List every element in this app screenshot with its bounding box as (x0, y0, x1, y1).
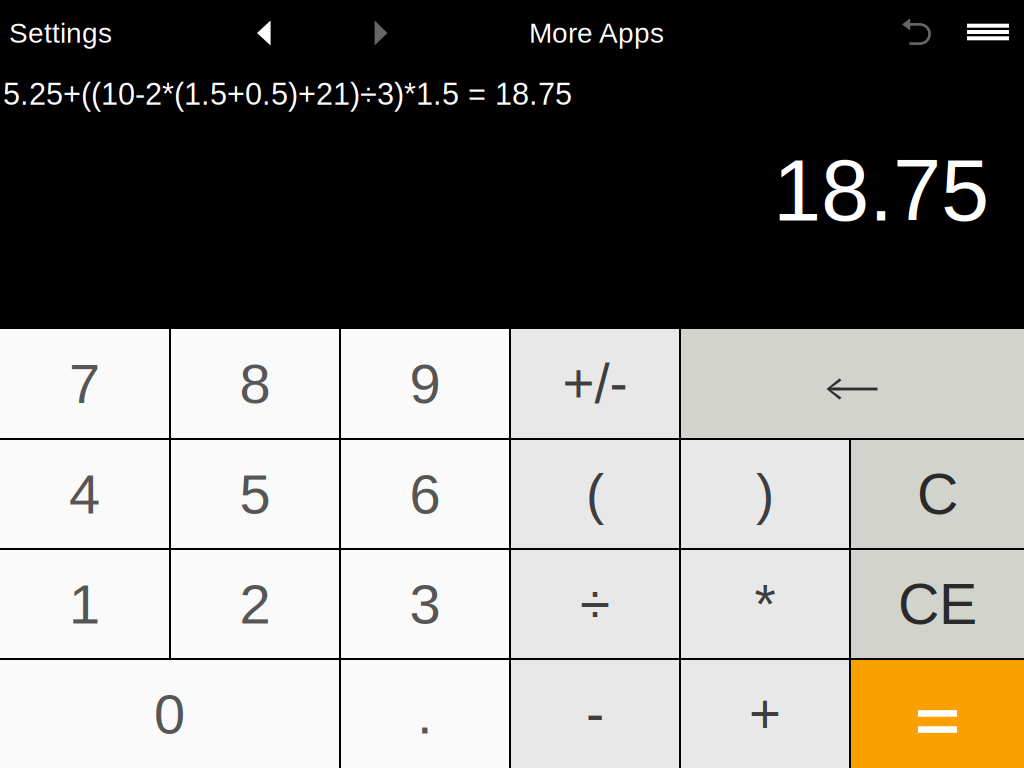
staticText: +/- (562, 353, 627, 414)
staticText: C (917, 462, 958, 526)
button[interactable]: - (511, 660, 679, 768)
staticText: 0 (154, 683, 185, 745)
button[interactable]: Undo (892, 11, 940, 55)
button[interactable]: Menu (959, 13, 1017, 53)
button[interactable]: ( (511, 440, 679, 548)
button[interactable]: 1 (0, 550, 169, 658)
staticText: . (417, 683, 433, 745)
button[interactable]: CE (851, 550, 1024, 658)
staticText: + (749, 683, 781, 745)
staticText: 8 (239, 352, 270, 415)
staticText: ÷ (580, 573, 610, 635)
button[interactable]: 5 (171, 440, 339, 548)
button[interactable]: 8 (171, 329, 339, 438)
staticText: - (586, 683, 604, 745)
staticText: 3 (409, 573, 440, 635)
button[interactable]: 7 (0, 329, 169, 438)
button[interactable]: +/- (511, 329, 679, 438)
staticText: * (754, 573, 775, 635)
button[interactable]: 4 (0, 440, 169, 548)
button[interactable]: + (681, 660, 849, 768)
staticText: 9 (409, 352, 440, 415)
button[interactable]: More Apps (515, 5, 678, 61)
staticText: 2 (239, 573, 270, 635)
staticText: 1 (69, 573, 100, 635)
button[interactable]: * (681, 550, 849, 658)
staticText: 18.75 (773, 142, 989, 239)
staticText: ) (756, 463, 774, 525)
staticText: CE (898, 572, 977, 636)
button[interactable]: 9 (341, 329, 509, 438)
button[interactable]: ) (681, 440, 849, 548)
staticText: ( (586, 463, 604, 525)
button[interactable]: ÷ (511, 550, 679, 658)
staticText: 4 (69, 463, 100, 525)
button[interactable]: C (851, 440, 1024, 548)
staticText: 7 (69, 352, 100, 415)
button[interactable]: 2 (171, 550, 339, 658)
button[interactable]: Previous (245, 10, 283, 55)
staticText: 5 (239, 463, 270, 525)
button[interactable]: 3 (341, 550, 509, 658)
staticText: More Apps (529, 17, 664, 49)
button[interactable]: 6 (341, 440, 509, 548)
button[interactable]: Equals (851, 660, 1024, 768)
button[interactable]: . (341, 660, 509, 768)
button[interactable]: Settings (0, 5, 126, 61)
staticText: Settings (9, 17, 112, 49)
button[interactable]: Next (363, 10, 399, 55)
button[interactable]: Backspace (681, 329, 1024, 438)
staticText: 5.25+((10-2*(1.5+0.5)+21)÷3)*1.5 = 18.75 (3, 77, 572, 111)
button[interactable]: 0 (0, 660, 339, 768)
staticText: 6 (409, 463, 440, 525)
